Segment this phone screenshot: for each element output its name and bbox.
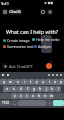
button[interactable]: m — [48, 93, 54, 99]
staticText: n — [44, 94, 46, 98]
button[interactable]: Enter — [53, 100, 64, 106]
button[interactable]: Clipboard — [1, 73, 5, 77]
staticText: Analyze — [38, 44, 52, 49]
staticText: u — [42, 80, 44, 84]
button[interactable]: Summarize text — [3, 44, 34, 49]
staticText: l — [58, 87, 59, 91]
button[interactable]: Keyboard option — [47, 73, 51, 77]
button[interactable]: New chat — [47, 9, 53, 15]
button[interactable]: i — [46, 79, 52, 85]
staticText: Summarize text — [7, 44, 34, 49]
staticText: Ask ChatGPT — [9, 64, 33, 69]
button[interactable]: Voice mode — [46, 63, 52, 69]
button[interactable]: Keyboard option — [55, 73, 59, 77]
button[interactable]: Keyboard option — [51, 73, 55, 77]
staticText: d — [20, 87, 22, 91]
button[interactable]: z — [11, 93, 18, 99]
staticText: , — [14, 101, 15, 105]
staticText: ChatGPT — [9, 9, 22, 15]
button[interactable]: Keyboard option — [59, 73, 63, 77]
button[interactable]: v — [30, 93, 36, 99]
staticText: k — [51, 87, 53, 91]
button[interactable]: Analyze — [34, 44, 52, 49]
button[interactable]: x — [18, 93, 24, 99]
button[interactable]: u — [40, 79, 46, 85]
button[interactable]: Ask ChatGPT — [9, 63, 39, 69]
button[interactable]: y — [34, 79, 40, 85]
staticText: r — [24, 80, 26, 84]
staticText: c — [26, 94, 28, 98]
button[interactable]: Open menu — [2, 9, 8, 15]
staticText: q — [3, 80, 5, 84]
button[interactable]: l — [55, 86, 61, 92]
staticText: e — [17, 80, 19, 84]
staticText: b — [38, 94, 40, 98]
staticText: 9:41 — [1, 1, 9, 6]
staticText: v — [32, 94, 34, 98]
staticText: m — [50, 94, 53, 98]
staticText: f — [27, 87, 29, 91]
staticText: What can I help with? — [6, 28, 58, 35]
button[interactable]: Space — [18, 100, 46, 106]
button[interactable]: h — [37, 86, 43, 92]
button[interactable]: b — [36, 93, 42, 99]
staticText: t — [30, 80, 32, 84]
button[interactable]: . — [46, 100, 53, 106]
staticText: . — [49, 101, 50, 105]
staticText: o — [54, 80, 56, 84]
staticText: s — [13, 87, 15, 91]
button[interactable]: Create image — [3, 38, 30, 43]
button[interactable]: a — [3, 86, 10, 92]
button[interactable]: t — [28, 79, 34, 85]
button[interactable]: q — [0, 79, 7, 85]
button[interactable]: d — [17, 86, 24, 92]
staticText: j — [46, 87, 47, 91]
staticText: h — [39, 87, 41, 91]
staticText: x — [20, 94, 22, 98]
button[interactable]: s — [10, 86, 17, 92]
button[interactable]: ?123 — [0, 100, 11, 106]
staticText: a — [6, 87, 8, 91]
button[interactable]: e — [14, 79, 21, 85]
button[interactable]: r — [21, 79, 28, 85]
button[interactable]: Help me write — [32, 37, 60, 42]
button[interactable]: , — [11, 100, 18, 106]
staticText: p — [60, 80, 62, 84]
staticText: w — [9, 80, 12, 84]
button[interactable]: Backspace — [54, 93, 64, 99]
button[interactable]: w — [7, 79, 14, 85]
staticText: y — [36, 80, 38, 84]
staticText: i — [49, 80, 50, 84]
button[interactable]: g — [31, 86, 37, 92]
button[interactable]: Temporary chat — [40, 9, 46, 15]
staticText: Create image — [7, 38, 30, 43]
staticText: Help me write — [36, 37, 60, 42]
button[interactable]: Shift — [0, 93, 11, 99]
button[interactable]: c — [24, 93, 30, 99]
button[interactable]: n — [42, 93, 48, 99]
button[interactable]: f — [24, 86, 31, 92]
staticText: z — [14, 94, 16, 98]
button[interactable]: Add attachment — [2, 63, 8, 69]
button[interactable]: GIF — [6, 73, 10, 77]
button[interactable]: p — [58, 79, 64, 85]
staticText: ?123 — [2, 101, 9, 105]
button[interactable]: j — [43, 86, 49, 92]
button[interactable]: k — [49, 86, 55, 92]
button[interactable]: ChatGPT — [9, 9, 22, 15]
button[interactable] — [41, 35, 52, 53]
staticText: g — [33, 87, 35, 91]
button[interactable]: o — [52, 79, 58, 85]
